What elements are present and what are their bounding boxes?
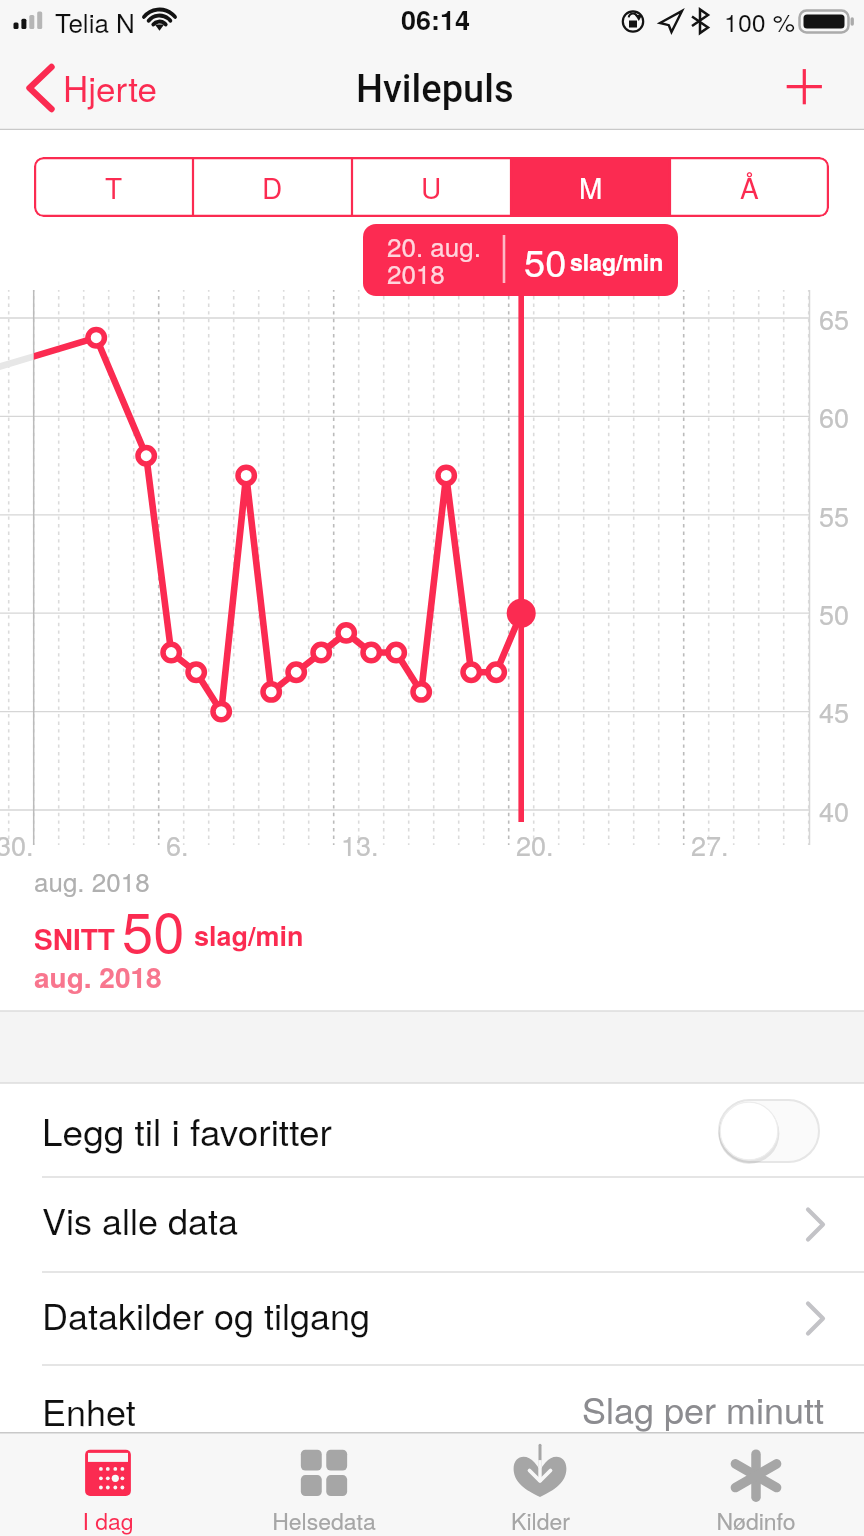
button[interactable]: Kilder [432,1432,648,1536]
staticText: Vis alle data [42,1194,239,1246]
staticText: Helsedata [272,1504,376,1536]
staticText: SNITT [34,918,115,958]
staticText: Enhet [42,1385,136,1437]
staticText: Hvilepuls [356,67,514,112]
staticText: U [421,167,442,207]
staticText: 65 [819,299,850,338]
staticText: 40 [819,791,850,830]
button[interactable]: Nødinfo [648,1432,864,1536]
button[interactable]: Legg til [769,55,844,130]
staticText: 2018 [387,254,445,291]
staticText: Legg til i favoritter [42,1104,332,1157]
staticText: aug. 2018 [34,956,162,996]
staticText: Å [740,167,759,207]
staticText: Hjerte [63,62,157,112]
staticText: 45 [819,692,850,731]
staticText: 50 [819,594,850,633]
button[interactable]: Helsedata [216,1432,432,1536]
staticText: 60 [819,397,850,436]
staticText: Slag per minutt [582,1383,825,1435]
button[interactable]: U [352,157,511,217]
button[interactable]: D [193,157,352,217]
staticText: 50 [122,889,185,969]
staticText: slag/min [570,245,664,278]
button[interactable]: Å [670,157,829,217]
button[interactable]: T [34,157,193,217]
staticText: 06:14 [401,0,471,39]
staticText: T [105,167,123,207]
button[interactable] [0,1365,864,1432]
staticText: 6. [166,825,189,864]
staticText: 100 % [724,3,795,39]
button[interactable]: M [511,157,670,217]
staticText: Datakilder og tilgang [42,1289,370,1341]
staticText: aug. 2018 [34,862,150,899]
button[interactable] [0,1272,864,1365]
staticText: 30. [0,825,34,864]
staticText: 13. [341,825,379,864]
button[interactable]: Legg til i favoritter [0,1083,864,1177]
staticText: 20. aug. [387,227,481,264]
staticText: Telia N [55,3,135,40]
staticText: 55 [819,496,850,535]
button[interactable]: I dag [0,1432,216,1536]
button[interactable] [0,1177,864,1272]
staticText: Kilder [511,1504,570,1536]
staticText: D [262,167,283,207]
staticText: 27. [691,825,729,864]
staticText: Nødinfo [716,1504,796,1536]
staticText: 20. [516,825,554,864]
staticText: M [579,167,603,207]
button[interactable]: Legg til i favoritter [718,1099,820,1163]
staticText: I dag [82,1504,134,1536]
button[interactable] [0,55,175,130]
staticText: slag/min [194,916,304,955]
staticText: 50 [524,233,567,287]
button[interactable] [363,224,678,296]
